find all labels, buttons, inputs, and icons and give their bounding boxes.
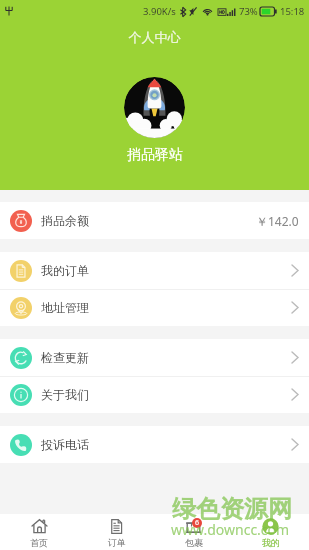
staticText: 检查更新 bbox=[41, 350, 89, 365]
button[interactable]: 订单 bbox=[78, 514, 155, 550]
button[interactable]: 6 bbox=[155, 514, 232, 550]
button[interactable]: 地址管理 bbox=[0, 289, 309, 326]
staticText: 个人中心 bbox=[0, 29, 309, 45]
staticText: www.downcc.com bbox=[171, 520, 290, 539]
staticText: 6 bbox=[195, 518, 200, 528]
button[interactable]: 我的 bbox=[232, 514, 309, 550]
staticText: 15:18 bbox=[280, 5, 305, 18]
staticText: 关于我们 bbox=[41, 387, 89, 402]
staticText: 包裹 bbox=[185, 537, 203, 548]
staticText: 3.90K/s bbox=[143, 5, 176, 18]
staticText: 73% bbox=[239, 5, 258, 18]
staticText: 绿色资源网 bbox=[172, 494, 292, 524]
staticText: 投诉电话 bbox=[41, 437, 89, 452]
staticText: 首页 bbox=[30, 537, 48, 548]
staticText: ￥142.0 bbox=[256, 213, 299, 229]
staticText: 我的订单 bbox=[41, 263, 89, 278]
staticText: 捎品驿站 bbox=[127, 146, 183, 164]
button[interactable]: 首页 bbox=[0, 514, 78, 550]
button[interactable]: 检查更新 bbox=[0, 339, 309, 376]
button[interactable]: 我的订单 bbox=[0, 252, 309, 289]
staticText: 订单 bbox=[108, 537, 126, 548]
button[interactable]: 投诉电话 bbox=[0, 426, 309, 463]
button[interactable]: 关于我们 bbox=[0, 376, 309, 413]
staticText: 我的 bbox=[262, 537, 280, 548]
staticText: 地址管理 bbox=[41, 300, 89, 315]
staticText: 捎品余额 bbox=[41, 213, 89, 228]
button[interactable]: 捎品余额 bbox=[0, 202, 309, 239]
